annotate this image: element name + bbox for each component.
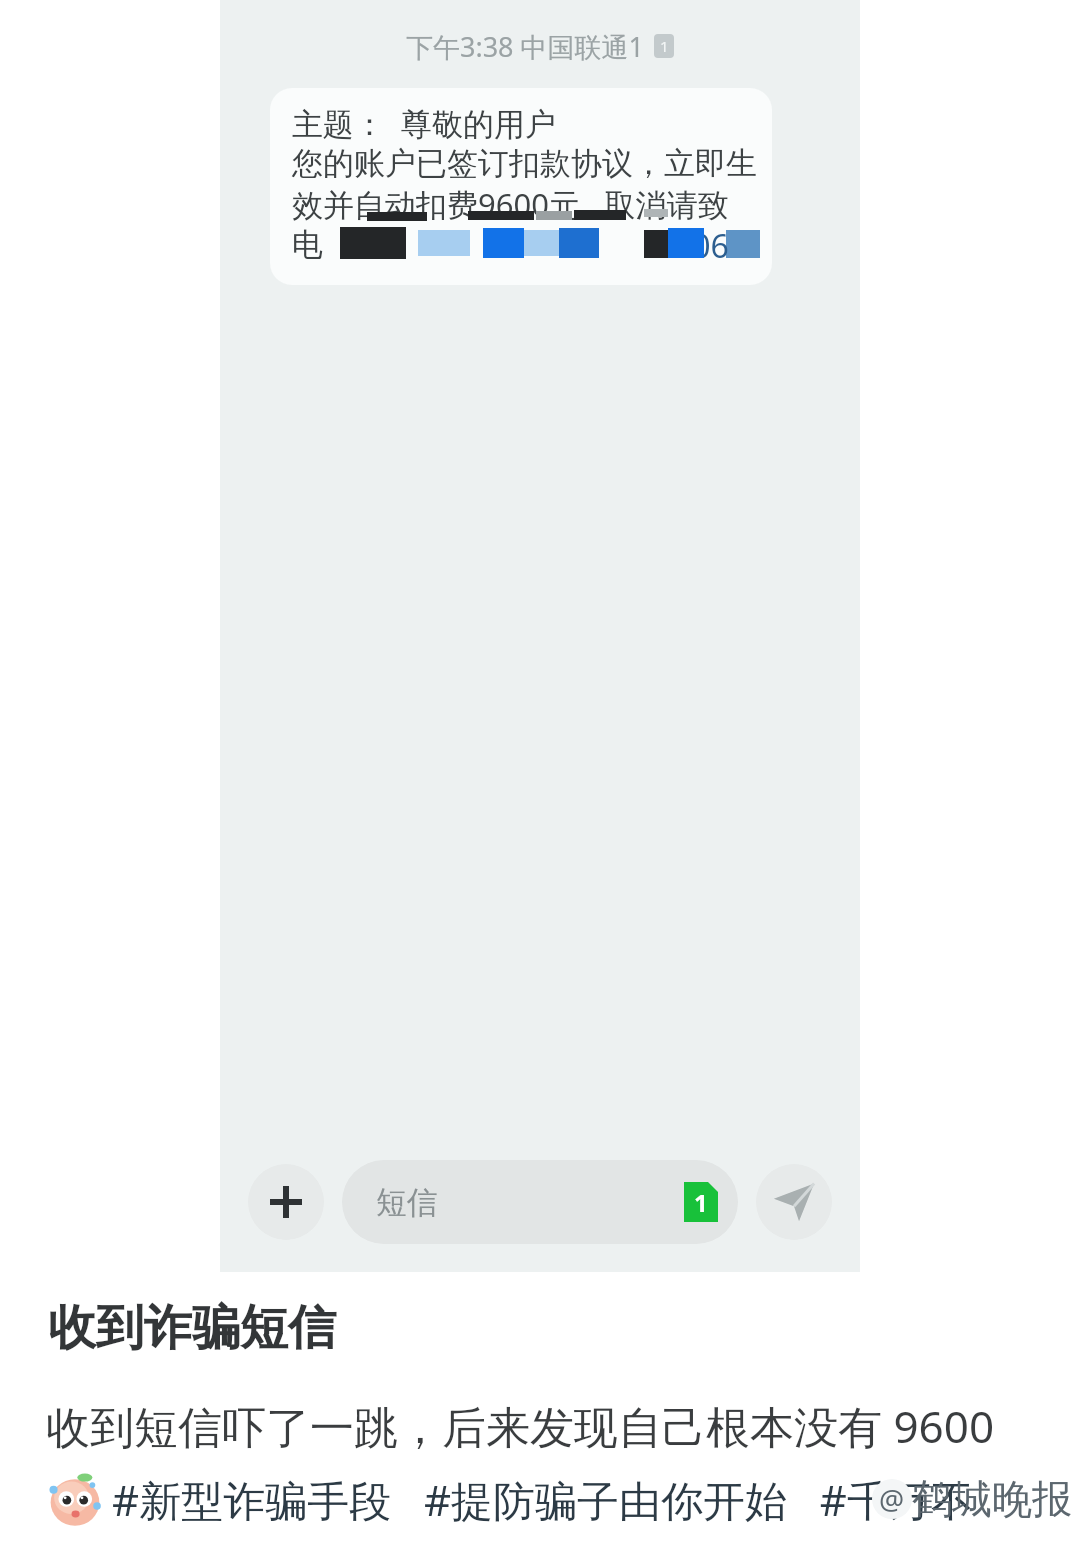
staticText: 下午3:38 中国联通1 <box>406 28 645 65</box>
button[interactable]: 主题： 尊敬的用户 <box>270 88 772 285</box>
staticText: 效并自动扣费9600元.. 取消请致 <box>292 183 729 225</box>
button[interactable]: Add attachment <box>248 1164 324 1240</box>
button[interactable]: 短信 <box>342 1160 738 1244</box>
staticText: 1 <box>660 36 669 56</box>
staticText: 鹤城晚报 <box>912 1474 1072 1524</box>
staticText: 您的账户已签订扣款协议，立即生 <box>292 144 757 183</box>
button[interactable]: #新型诈骗手段 #提防骗子由你开始 #千万不 <box>112 1471 973 1528</box>
staticText: 短信 <box>376 1183 438 1222</box>
button[interactable]: Send <box>756 1164 832 1240</box>
staticText: 电 <box>292 225 323 264</box>
staticText: 1 <box>694 1186 708 1219</box>
staticText: 收到诈骗短信 <box>48 1298 336 1358</box>
staticText: 主题： 尊敬的用户 <box>292 102 557 144</box>
staticText: 收到短信吓了一跳，后来发现自己根本没有 9600 <box>46 1396 995 1456</box>
staticText: @ <box>879 1480 905 1518</box>
staticText: 506 <box>674 224 729 268</box>
